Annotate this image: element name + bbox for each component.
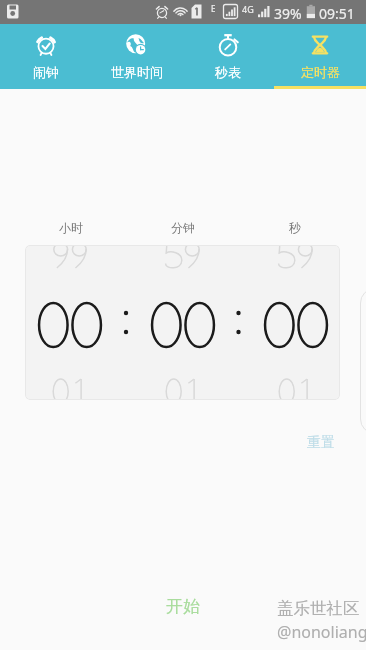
staticText: 盖乐世社区 xyxy=(277,598,360,619)
staticText: 分钟 xyxy=(171,220,195,235)
button[interactable]: 秒选择器 xyxy=(239,245,340,400)
staticText: 秒 xyxy=(289,220,301,235)
staticText: E xyxy=(211,3,216,14)
button[interactable]: 定时器 xyxy=(274,24,366,89)
button[interactable]: 秒表 xyxy=(182,24,274,89)
staticText: @nonoliang xyxy=(277,621,366,643)
staticText: 重置 xyxy=(307,434,335,452)
staticText: 定时器 xyxy=(301,64,340,80)
button[interactable]: 开始 xyxy=(136,588,230,625)
button[interactable]: 闹钟 xyxy=(0,24,91,89)
staticText: 4G xyxy=(242,3,254,15)
staticText: 秒表 xyxy=(215,64,241,80)
staticText: 开始 xyxy=(166,596,200,617)
button[interactable]: 世界时间 xyxy=(91,24,182,89)
button[interactable]: 分钟选择器 xyxy=(126,245,239,400)
staticText: 闹钟 xyxy=(33,64,59,80)
button[interactable]: 小时选择器 xyxy=(25,245,126,400)
staticText: 小时 xyxy=(59,220,83,235)
staticText: 世界时间 xyxy=(111,64,163,80)
staticText: 39% xyxy=(274,4,302,23)
button[interactable]: 重置 xyxy=(295,427,347,459)
staticText: 09:51 xyxy=(319,4,355,23)
